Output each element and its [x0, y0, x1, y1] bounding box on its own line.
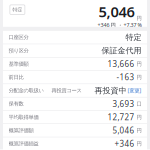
staticText: 口座区分	[8, 34, 28, 41]
staticText: +346	[114, 138, 134, 149]
button[interactable]: 概算評価額	[3, 124, 147, 137]
staticText: 口	[134, 100, 141, 107]
staticText: 前日比	[8, 74, 23, 80]
button[interactable]: 平均取得単価	[3, 111, 147, 124]
staticText: 5,046	[98, 2, 134, 21]
staticText: 3,693	[112, 98, 134, 109]
staticText: 12,727	[107, 112, 134, 122]
button[interactable]: 前日比	[3, 71, 147, 84]
staticText: 円	[134, 127, 141, 134]
staticText: 分配金の取扱い	[8, 87, 43, 94]
staticText: 円	[134, 114, 141, 120]
button[interactable]: 概算評価損益	[3, 137, 147, 150]
staticText: 基準価額	[8, 61, 28, 67]
button[interactable]: 保有数	[3, 97, 147, 111]
staticText: 円	[134, 15, 141, 21]
staticText: 保有数	[8, 100, 23, 107]
staticText: 特定	[12, 6, 22, 13]
staticText: 特定	[125, 32, 141, 42]
button[interactable]: 口座区分	[3, 31, 147, 44]
staticText: 円	[134, 74, 141, 80]
staticText: 再投資中	[94, 86, 126, 95]
button[interactable]: 基準価額	[3, 57, 147, 71]
button[interactable]: 分配金の取扱い	[3, 84, 147, 97]
staticText: 13,666	[107, 59, 134, 69]
staticText: [変更]	[126, 87, 141, 94]
staticText: +346 円 ・ +7.37 %	[97, 21, 141, 28]
staticText: 平均取得単価	[8, 114, 38, 120]
staticText: 概算評価額	[8, 127, 33, 134]
button[interactable]: 預り区分	[3, 44, 147, 57]
staticText: 保証金代用	[101, 46, 141, 55]
staticText: 円	[134, 61, 141, 67]
button[interactable]: 特定	[10, 5, 25, 14]
staticText: 預り区分	[8, 47, 28, 54]
staticText: 概算評価損益	[8, 140, 38, 147]
staticText: 5,046	[112, 125, 134, 136]
staticText: -163	[116, 72, 134, 82]
staticText: 再投資コース	[43, 87, 81, 94]
staticText: 円	[134, 140, 141, 147]
